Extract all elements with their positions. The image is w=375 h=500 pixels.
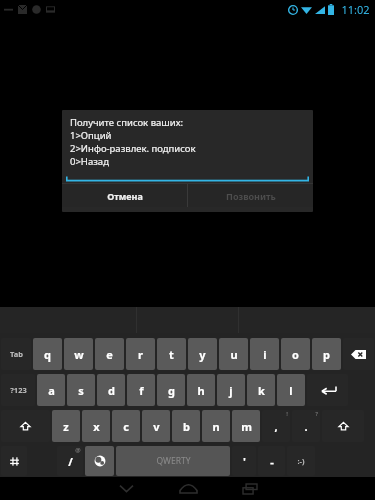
staticText: / — [68, 454, 73, 469]
button[interactable]: s — [67, 374, 95, 406]
button[interactable]: Home — [157, 477, 219, 500]
staticText: a — [48, 383, 55, 398]
button[interactable]: ' — [232, 446, 256, 476]
staticText: Получите список ваших: — [70, 116, 184, 129]
staticText: :-) — [297, 456, 305, 466]
staticText: - — [270, 454, 274, 469]
button[interactable]: Позвонить — [188, 184, 313, 207]
staticText: b — [183, 419, 190, 434]
staticText: p — [323, 347, 330, 362]
staticText: k — [258, 383, 265, 398]
staticText: 2>Инфо-развлек. подписок — [70, 142, 196, 155]
button[interactable]: k — [247, 374, 275, 406]
staticText: c — [123, 419, 129, 434]
staticText: n — [212, 419, 220, 434]
staticText: Отмена — [107, 190, 143, 202]
button[interactable]: g — [157, 374, 185, 406]
staticText: , — [274, 419, 278, 434]
button[interactable]: x — [82, 410, 110, 442]
button[interactable]: m — [232, 410, 260, 442]
button[interactable]: w — [64, 338, 93, 370]
staticText: e — [106, 347, 113, 362]
staticText: o — [292, 347, 299, 362]
button[interactable]: f — [127, 374, 155, 406]
button[interactable]: c — [112, 410, 140, 442]
staticText: . — [304, 419, 308, 434]
staticText: ?123 — [10, 385, 27, 395]
button[interactable]: settings — [1, 446, 27, 476]
button[interactable]: enter — [307, 374, 348, 406]
button[interactable]: o — [281, 338, 310, 370]
staticText: y — [199, 347, 206, 362]
button[interactable]: Back — [95, 477, 157, 500]
button[interactable]: u — [219, 338, 248, 370]
staticText: s — [78, 383, 84, 398]
button[interactable]: ?123 — [1, 374, 35, 406]
button[interactable]: d — [97, 374, 125, 406]
button[interactable]: Tab — [1, 338, 31, 370]
staticText: 0>Назад — [70, 155, 109, 168]
button[interactable]: a — [37, 374, 65, 406]
staticText: @ — [75, 446, 81, 454]
staticText: w — [74, 347, 84, 362]
staticText: r — [138, 347, 143, 362]
button[interactable]: z — [52, 410, 80, 442]
button[interactable]: QWERTY — [116, 446, 230, 476]
button[interactable]: h — [187, 374, 215, 406]
button[interactable]: n — [202, 410, 230, 442]
button[interactable]: back — [343, 338, 374, 370]
staticText: m — [241, 419, 252, 434]
button[interactable]: t — [157, 338, 186, 370]
staticText: Позвонить — [226, 190, 276, 202]
staticText: ' — [243, 454, 246, 469]
staticText: z — [63, 419, 69, 434]
button[interactable]: :-) — [287, 446, 315, 476]
button[interactable]: q — [33, 338, 62, 370]
staticText: f — [139, 383, 144, 398]
button[interactable]: . — [292, 410, 320, 442]
button[interactable]: e — [95, 338, 124, 370]
staticText: t — [169, 347, 174, 362]
staticText: h — [197, 383, 205, 398]
staticText: ? — [315, 410, 318, 418]
button[interactable]: shift — [1, 410, 50, 442]
staticText: l — [289, 383, 293, 398]
button[interactable]: Recents — [219, 477, 281, 500]
staticText: 1>Опций — [70, 129, 112, 142]
staticText: v — [153, 419, 160, 434]
staticText: Tab — [10, 349, 23, 359]
button[interactable]: b — [172, 410, 200, 442]
staticText: d — [108, 383, 115, 398]
staticText: g — [168, 383, 175, 398]
staticText: u — [230, 347, 238, 362]
button[interactable]: v — [142, 410, 170, 442]
staticText: ! — [286, 410, 288, 418]
staticText: j — [229, 383, 233, 398]
button[interactable]: l — [277, 374, 305, 406]
staticText: i — [263, 347, 267, 362]
button[interactable]: - — [258, 446, 285, 476]
button[interactable]: / — [57, 446, 83, 476]
button[interactable]: Отмена — [62, 184, 187, 207]
button[interactable]: globe — [85, 446, 114, 476]
button[interactable]: shift — [322, 410, 364, 442]
button[interactable]: y — [188, 338, 217, 370]
button[interactable]: p — [312, 338, 341, 370]
staticText: QWERTY — [156, 455, 191, 467]
button[interactable]: , — [262, 410, 290, 442]
button[interactable]: i — [250, 338, 279, 370]
staticText: 11:02 — [341, 2, 370, 17]
button[interactable]: r — [126, 338, 155, 370]
staticText: q — [44, 347, 51, 362]
button[interactable]: j — [217, 374, 245, 406]
staticText: x — [93, 419, 100, 434]
